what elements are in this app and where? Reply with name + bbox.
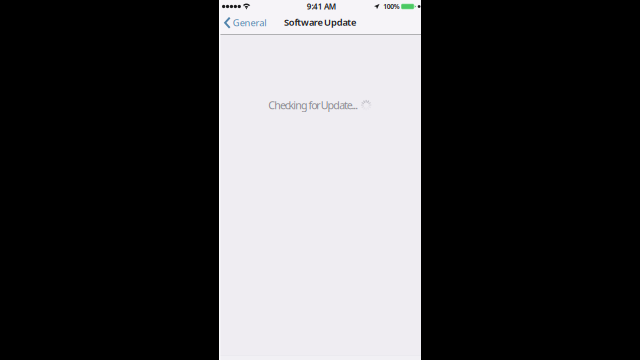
staticText: Checking for Update... [268,98,358,112]
staticText: 9:41 AM [307,1,336,12]
staticText: Software Update [284,16,356,28]
staticText: General [233,17,266,29]
button[interactable]: General [219,13,270,34]
staticText: 100% [383,2,400,11]
